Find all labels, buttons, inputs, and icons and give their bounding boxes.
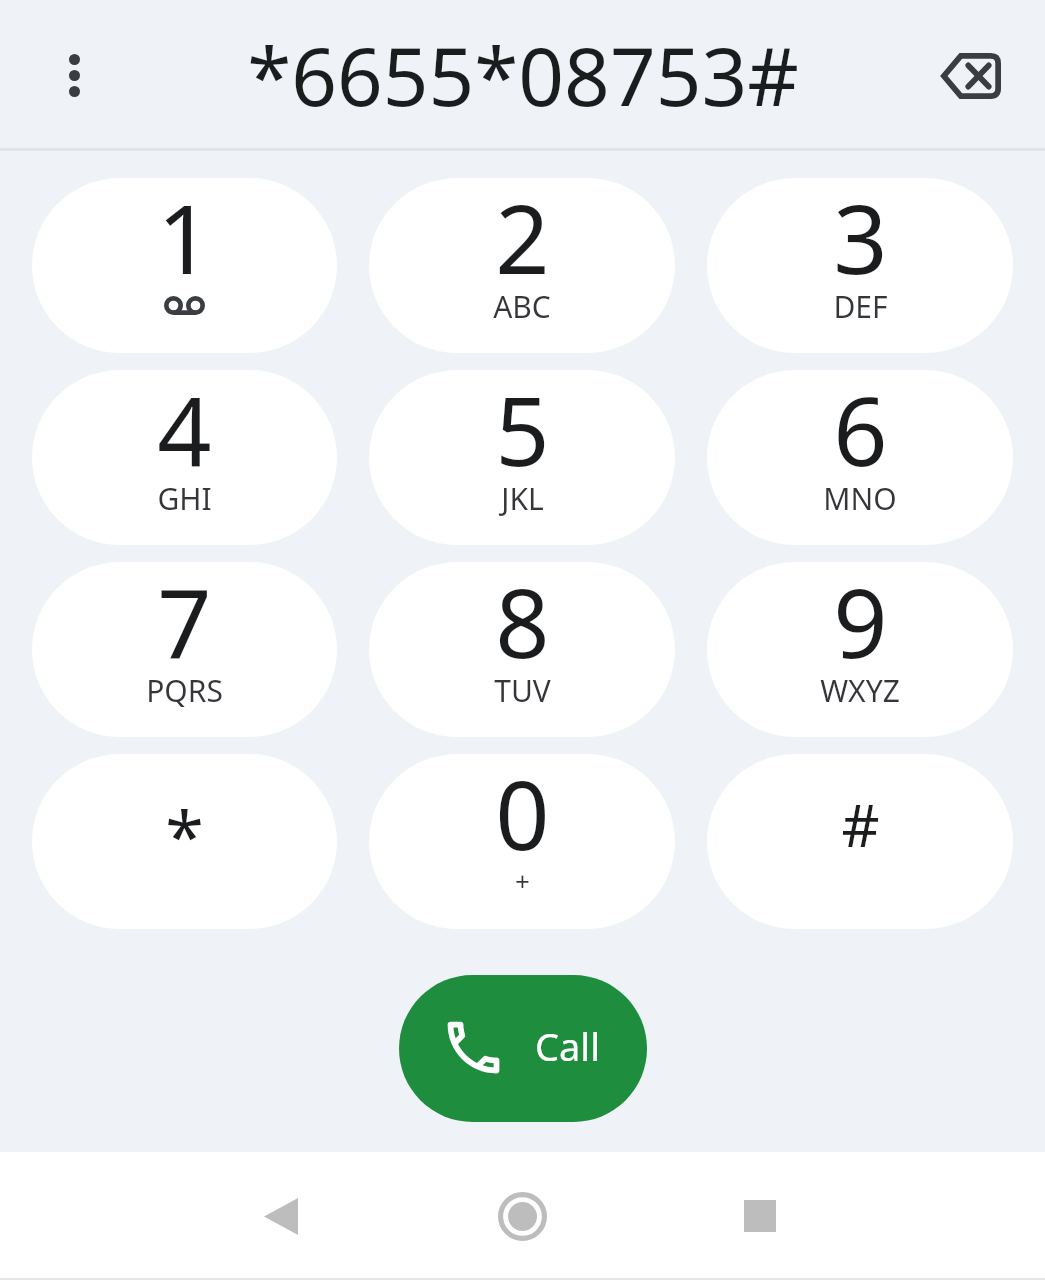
staticText: 9 [833,562,888,676]
button[interactable]: Home [462,1157,582,1275]
button[interactable]: 0 [369,754,675,929]
button[interactable]: 3 [707,178,1013,353]
button[interactable]: Recent apps [700,1157,820,1275]
staticText: MNO [823,478,897,519]
button[interactable]: More options [39,40,109,110]
staticText: *6655*08753# [247,20,799,129]
button[interactable]: Call [399,975,647,1122]
staticText: 3 [833,178,888,292]
staticText: 4 [157,370,212,484]
staticText: + [515,863,530,898]
button[interactable]: 8 [369,562,675,737]
button[interactable]: 7 [32,562,337,737]
button[interactable]: Backspace [927,32,1015,120]
button[interactable]: 2 [369,178,675,353]
staticText: JKL [501,478,544,519]
button[interactable]: Back [221,1157,341,1275]
staticText: ABC [493,286,551,327]
button[interactable]: 9 [707,562,1013,737]
button[interactable]: 5 [369,370,675,545]
button[interactable]: 6 [707,370,1013,545]
button[interactable]: Star [32,754,337,929]
staticText: Call [535,1020,600,1072]
staticText: 7 [157,562,212,676]
staticText: TUV [494,670,551,711]
staticText: 1 [157,178,212,292]
staticText: DEF [833,286,888,327]
staticText: 5 [495,370,550,484]
staticText: 0 [495,754,550,868]
button[interactable]: 1 [32,178,337,353]
staticText: WXYZ [820,670,900,711]
staticText: PQRS [146,670,223,711]
staticText: * [165,787,204,882]
staticText: # [841,784,880,864]
staticText: GHI [157,478,212,519]
staticText: 2 [495,178,550,292]
staticText: 8 [495,562,550,676]
staticText: 6 [833,370,888,484]
button[interactable]: 4 [32,370,337,545]
button[interactable]: Pound [707,754,1013,929]
